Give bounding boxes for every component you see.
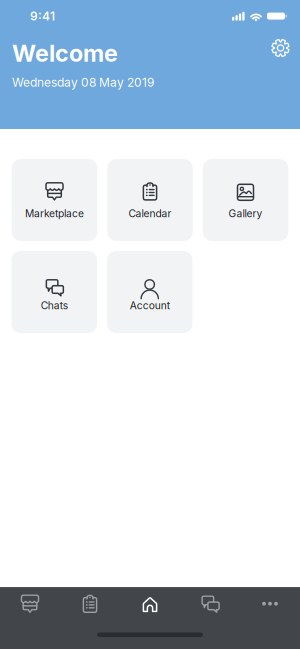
button[interactable]: More xyxy=(240,593,300,615)
staticText: Calendar xyxy=(128,207,171,220)
staticText: Wednesday 08 May 2019 xyxy=(12,75,154,90)
button[interactable]: Chats xyxy=(180,593,240,615)
button[interactable]: Calendar xyxy=(107,159,193,241)
staticText: Account xyxy=(130,299,170,312)
button[interactable]: Calendar xyxy=(60,593,120,615)
button[interactable]: Marketplace xyxy=(12,159,97,241)
staticText: 9:41 xyxy=(30,9,55,23)
button[interactable]: Gallery xyxy=(203,159,288,241)
staticText: Welcome xyxy=(12,39,118,67)
staticText: Gallery xyxy=(228,207,262,220)
button[interactable]: Account xyxy=(107,251,192,333)
button[interactable]: Settings xyxy=(271,0,300,57)
button[interactable]: Marketplace xyxy=(0,593,60,615)
button[interactable]: Home xyxy=(120,593,180,615)
staticText: Chats xyxy=(41,299,68,312)
staticText: Marketplace xyxy=(25,207,84,220)
button[interactable]: Chats xyxy=(11,251,97,333)
